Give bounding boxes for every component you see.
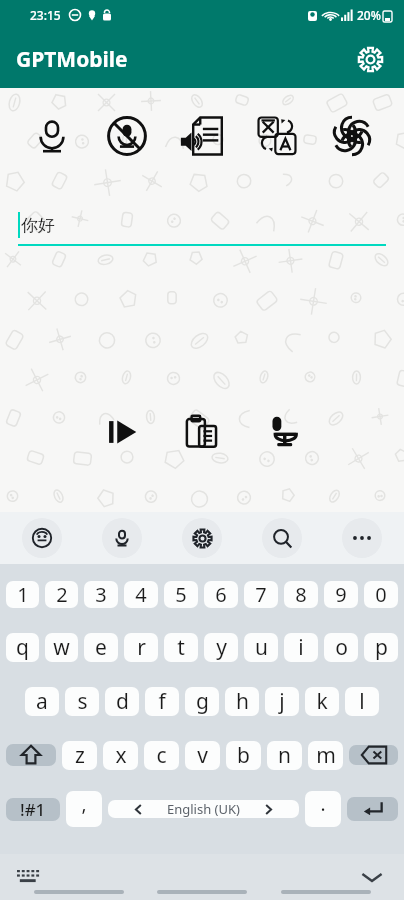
button[interactable]: t [164,633,198,662]
button[interactable]: 7 [244,581,278,608]
button[interactable]: 2 [45,581,78,608]
button[interactable]: Play [96,406,148,458]
staticText: e [95,633,107,662]
staticText: English (UK) [167,800,240,818]
button[interactable]: 6 [204,581,238,608]
button[interactable]: Enter [347,797,398,821]
staticText: 8 [295,581,307,608]
button[interactable]: Backspace [349,745,398,765]
staticText: o [335,633,348,662]
staticText: j [279,687,285,716]
button[interactable]: m [308,741,343,770]
button[interactable]: Translate [251,110,303,162]
button[interactable]: 5 [164,581,198,608]
button[interactable]: Symbols [6,798,60,821]
staticText: k [316,687,328,716]
button[interactable]: l [345,687,379,716]
button[interactable]: c [144,741,179,770]
staticText: !#1 [20,798,46,821]
button[interactable]: y [204,633,238,662]
button[interactable]: h [225,687,259,716]
button[interactable]: Stickers [22,518,62,558]
button[interactable]: , [66,791,102,827]
staticText: h [236,687,249,716]
staticText: w [53,633,70,662]
button[interactable]: Shift [6,744,56,766]
staticText: v [197,741,208,770]
button[interactable]: Hide keyboard [350,855,394,899]
staticText: 23:15 [30,7,61,23]
button[interactable]: Change keyboard [6,855,50,899]
button[interactable]: English (UK) [108,800,299,818]
staticText: t [177,633,185,662]
button[interactable]: Microphone [26,110,78,162]
button[interactable]: 1 [6,581,39,608]
staticText: u [255,633,268,662]
staticText: y [216,633,227,662]
button[interactable]: u [244,633,278,662]
staticText: GPTMobile [16,45,128,74]
button[interactable]: Search [262,518,302,558]
staticText: d [116,687,129,716]
button[interactable]: . [305,791,341,827]
button[interactable]: 3 [84,581,118,608]
button[interactable]: s [65,687,99,716]
staticText: 9 [335,581,347,608]
button[interactable]: n [267,741,302,770]
button[interactable]: k [305,687,339,716]
button[interactable]: 0 [364,581,398,608]
button[interactable]: q [6,633,39,662]
button[interactable]: OpenAI [326,110,378,162]
button[interactable]: Keyboard settings [182,518,222,558]
staticText: 6 [215,581,227,608]
staticText: z [75,741,85,770]
button[interactable]: d [105,687,139,716]
staticText: 4 [135,581,147,608]
button[interactable]: 8 [284,581,318,608]
button[interactable]: Read aloud [176,110,228,162]
staticText: p [375,633,388,662]
button[interactable]: More options [342,518,382,558]
button[interactable]: Mute microphone [101,110,153,162]
button[interactable]: Paste [176,406,228,458]
button[interactable]: w [45,633,78,662]
button[interactable]: e [84,633,118,662]
staticText: s [77,687,88,716]
button[interactable]: Settings [350,39,390,79]
button[interactable]: Voice typing [102,518,142,558]
button[interactable]: Voice input [256,406,308,458]
staticText: 7 [255,581,267,608]
button[interactable]: g [185,687,219,716]
button[interactable]: z [62,741,97,770]
button[interactable]: r [124,633,158,662]
staticText: 你好 [21,215,55,236]
button[interactable]: a [25,687,59,716]
staticText: g [196,687,209,716]
staticText: r [137,633,146,662]
button[interactable]: o [324,633,358,662]
button[interactable]: i [284,633,318,662]
button[interactable]: v [185,741,220,770]
button[interactable]: x [103,741,138,770]
staticText: . [320,791,326,817]
staticText: 1 [17,581,29,608]
staticText: l [359,687,365,716]
staticText: 20% [357,7,381,23]
button[interactable]: p [364,633,398,662]
button[interactable]: f [145,687,179,716]
staticText: x [115,741,127,770]
button[interactable]: 4 [124,581,158,608]
staticText: 5 [175,581,187,608]
staticText: c [156,741,167,770]
button[interactable]: b [226,741,261,770]
button[interactable]: 你好 [18,200,386,246]
staticText: m [316,741,336,770]
staticText: 2 [56,581,68,608]
staticText: a [36,687,48,716]
staticText: , [81,791,87,817]
staticText: n [278,741,291,770]
button[interactable]: j [265,687,299,716]
staticText: 0 [375,581,387,608]
button[interactable]: 9 [324,581,358,608]
staticText: f [158,687,166,716]
